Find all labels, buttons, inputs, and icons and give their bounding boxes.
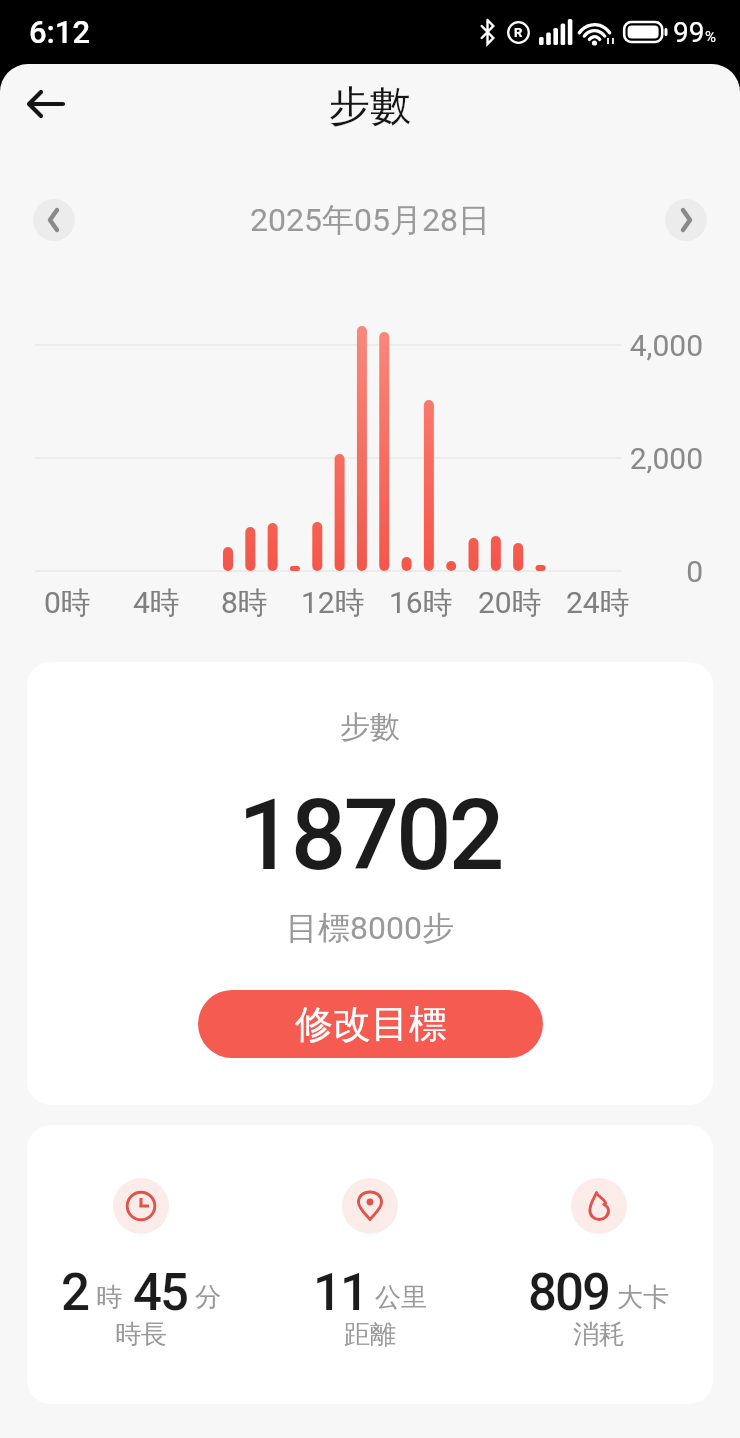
staticText: 2025年05月28日	[250, 200, 490, 240]
staticText: 24時	[566, 584, 630, 622]
staticText: 6:12	[29, 14, 91, 50]
staticText: 公里	[375, 1281, 427, 1314]
staticText: R	[514, 25, 523, 40]
staticText: 16時	[389, 584, 453, 622]
staticText: 距離	[344, 1318, 396, 1351]
staticText: 99	[673, 16, 705, 49]
staticText: 時長	[115, 1318, 167, 1351]
staticText: 修改目標	[295, 1000, 447, 1048]
button[interactable]	[33, 199, 75, 241]
staticText: 步數	[329, 81, 411, 133]
staticText: 20時	[478, 584, 542, 622]
button[interactable]: 2	[27, 1125, 255, 1404]
staticText: 目標8000步	[286, 908, 454, 948]
staticText: 4,000	[629, 328, 703, 363]
staticText: 4時	[133, 584, 180, 622]
staticText: 消耗	[573, 1318, 625, 1351]
staticText: 18702	[238, 778, 502, 893]
button[interactable]	[665, 199, 707, 241]
staticText: 0時	[44, 584, 91, 622]
staticText: 809	[528, 1263, 609, 1323]
staticText: 時	[96, 1281, 122, 1314]
button[interactable]	[26, 86, 66, 122]
staticText: 2,000	[629, 441, 703, 476]
button[interactable]: 11	[255, 1125, 484, 1404]
staticText: %	[705, 28, 716, 46]
staticText: 大卡	[617, 1281, 669, 1314]
staticText: 11	[313, 1263, 367, 1323]
staticText: 45	[133, 1263, 187, 1323]
staticText: 8時	[221, 584, 268, 622]
button[interactable]: 修改目標	[198, 990, 543, 1058]
staticText: 0	[686, 554, 703, 589]
staticText: 12時	[301, 584, 365, 622]
staticText: 2	[61, 1263, 88, 1323]
button[interactable]: 809	[484, 1125, 713, 1404]
staticText: 步數	[340, 708, 400, 746]
staticText: 分	[195, 1281, 221, 1314]
